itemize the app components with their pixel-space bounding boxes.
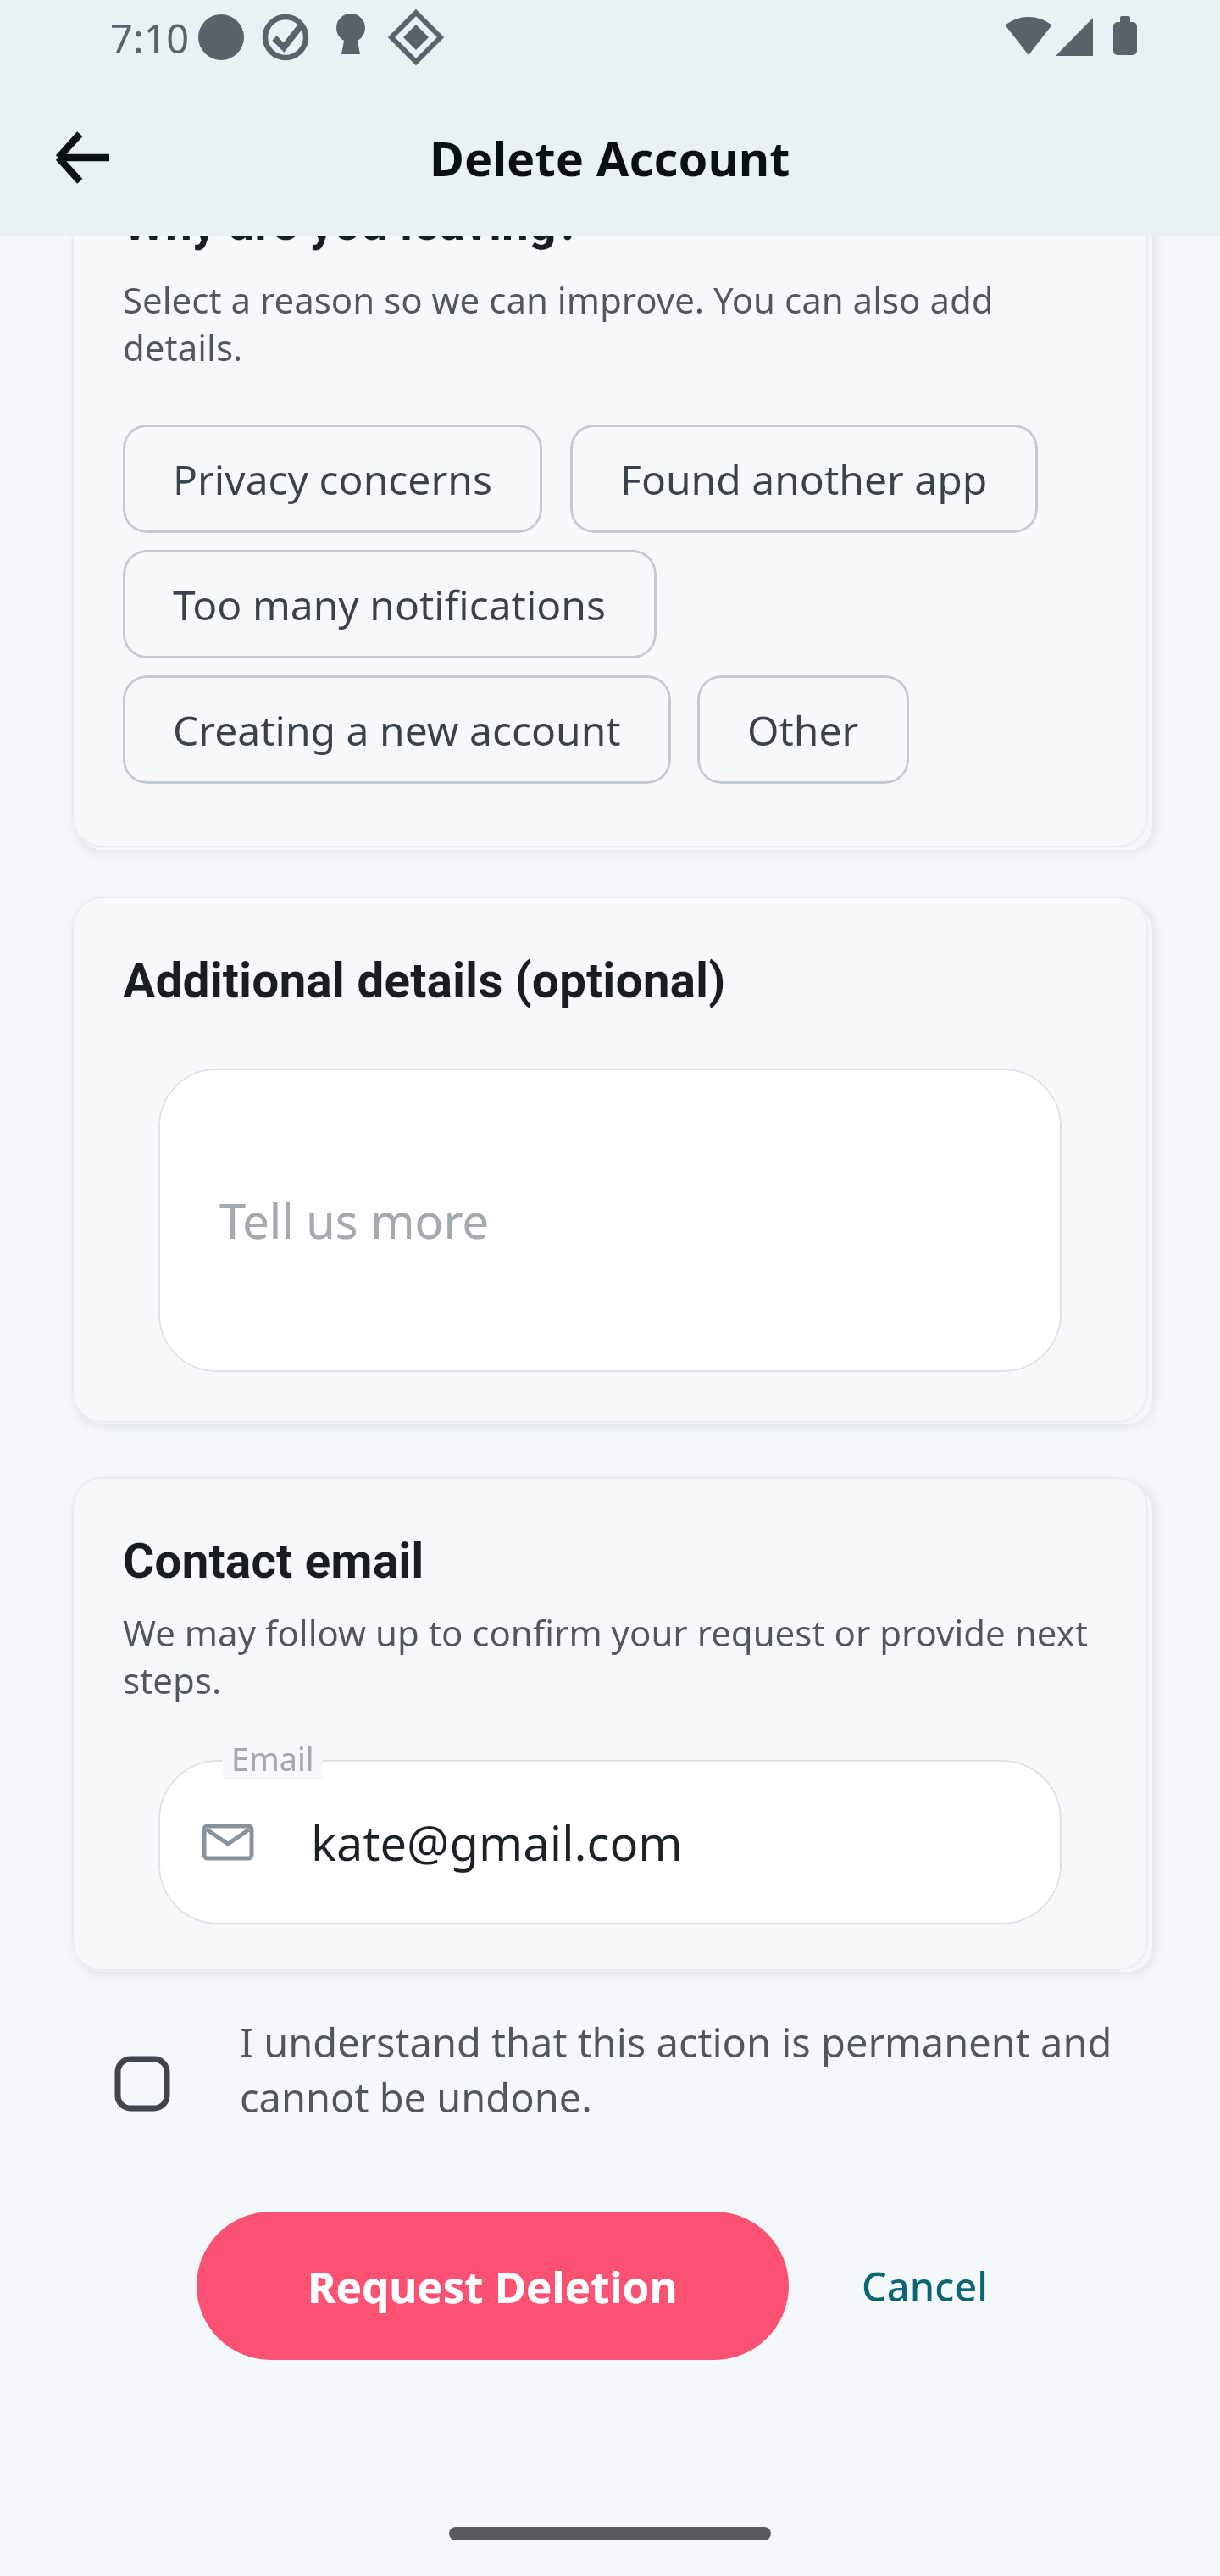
- staticText: Contact email: [123, 1533, 424, 1590]
- staticText: Creating a new account: [173, 702, 621, 758]
- staticText: Why are you leaving?: [123, 195, 580, 252]
- staticText: We may follow up to confirm your request…: [123, 1608, 1097, 1704]
- button[interactable]: Back: [32, 107, 134, 208]
- staticText: Request Deletion: [308, 2257, 678, 2315]
- staticText: kate@gmail.com: [311, 1810, 683, 1874]
- staticText: I understand that this action is permane…: [240, 2015, 1135, 2124]
- staticText: Additional details (optional): [123, 952, 726, 1009]
- button[interactable]: Request Deletion: [197, 2212, 789, 2360]
- staticText: Other: [747, 702, 859, 758]
- staticText: Delete Account: [430, 125, 790, 190]
- staticText: 7:10: [110, 11, 190, 65]
- staticText: Found another app: [620, 452, 988, 507]
- button[interactable]: I understand that this action is permane…: [115, 2015, 1135, 2124]
- staticText: Cancel: [862, 2259, 988, 2313]
- button[interactable]: kate@gmail.com: [158, 1760, 1062, 1924]
- button[interactable]: Creating a new account: [123, 675, 671, 784]
- button[interactable]: Tell us more: [158, 1069, 1062, 1372]
- button[interactable]: Privacy concerns: [123, 425, 542, 533]
- button[interactable]: Too many notifications: [123, 550, 657, 658]
- staticText: Email: [231, 1736, 314, 1780]
- staticText: Too many notifications: [173, 577, 607, 632]
- staticText: Select a reason so we can improve. You c…: [123, 275, 1097, 371]
- button[interactable]: Cancel: [831, 2235, 1018, 2337]
- staticText: Privacy concerns: [173, 452, 492, 507]
- button[interactable]: Found another app: [570, 425, 1038, 533]
- staticText: Tell us more: [219, 1188, 490, 1252]
- button[interactable]: Other: [697, 675, 909, 784]
